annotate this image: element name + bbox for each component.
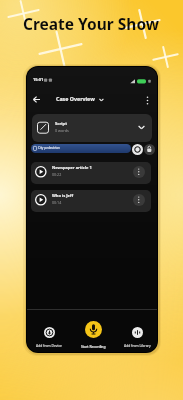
button[interactable] [133, 194, 145, 206]
button[interactable] [145, 95, 150, 106]
button[interactable]: Start Recording [71, 321, 115, 352]
button[interactable] [33, 96, 40, 103]
button[interactable]: Add from Device [27, 322, 71, 350]
button[interactable]: Add from Library [115, 322, 157, 350]
staticText: 0 words [55, 128, 69, 133]
button[interactable] [144, 144, 155, 155]
button[interactable]: Case Overview [56, 95, 95, 102]
button[interactable]: Who is Jeff [31, 190, 151, 212]
button[interactable]: Script [32, 114, 152, 142]
staticText: Who is Jeff [52, 193, 74, 198]
staticText: Script [55, 121, 68, 127]
staticText: 00:14 [52, 200, 62, 205]
staticText: Start Recording [81, 344, 106, 348]
staticText: City pedestrian [38, 146, 60, 150]
staticText: Add from Device [36, 343, 62, 347]
button[interactable] [133, 166, 145, 178]
staticText: 00:22 [52, 172, 62, 177]
button[interactable]: Newspaper article 1 [31, 162, 151, 184]
staticText: Create Your Show [23, 13, 160, 34]
staticText: Newspaper article 1 [52, 165, 92, 170]
staticText: Add from Library [124, 343, 151, 347]
button[interactable]: City pedestrian [31, 144, 131, 153]
staticText: 15:01 [33, 77, 44, 82]
button[interactable] [132, 144, 143, 155]
